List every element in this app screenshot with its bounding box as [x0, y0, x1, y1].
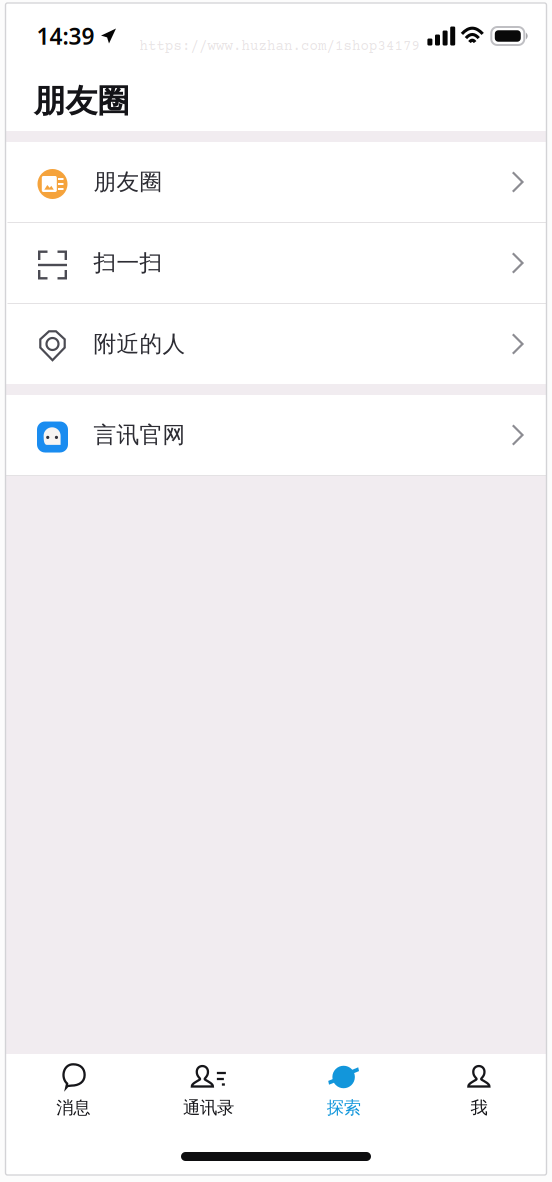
staticText: 14:39: [36, 21, 94, 51]
staticText: 扫一扫: [93, 249, 162, 277]
button[interactable]: 言讯官网: [5, 395, 546, 475]
staticText: 消息: [56, 1097, 90, 1118]
staticText: 朋友圈: [33, 81, 129, 121]
button[interactable]: 朋友圈: [5, 142, 546, 222]
staticText: 我: [470, 1097, 487, 1118]
button[interactable]: 通讯录: [141, 1054, 276, 1118]
staticText: https://www.huzhan.com/1shop34179: [139, 39, 419, 55]
staticText: 朋友圈: [93, 168, 162, 196]
staticText: 附近的人: [93, 330, 185, 358]
staticText: 探索: [327, 1097, 361, 1118]
staticText: 言讯官网: [93, 421, 185, 449]
button[interactable]: 我: [411, 1054, 546, 1118]
button[interactable]: 探索: [276, 1054, 411, 1118]
button[interactable]: 消息: [5, 1054, 141, 1118]
staticText: 通讯录: [183, 1097, 234, 1118]
button[interactable]: 附近的人: [5, 304, 546, 384]
button[interactable]: 扫一扫: [5, 223, 546, 303]
